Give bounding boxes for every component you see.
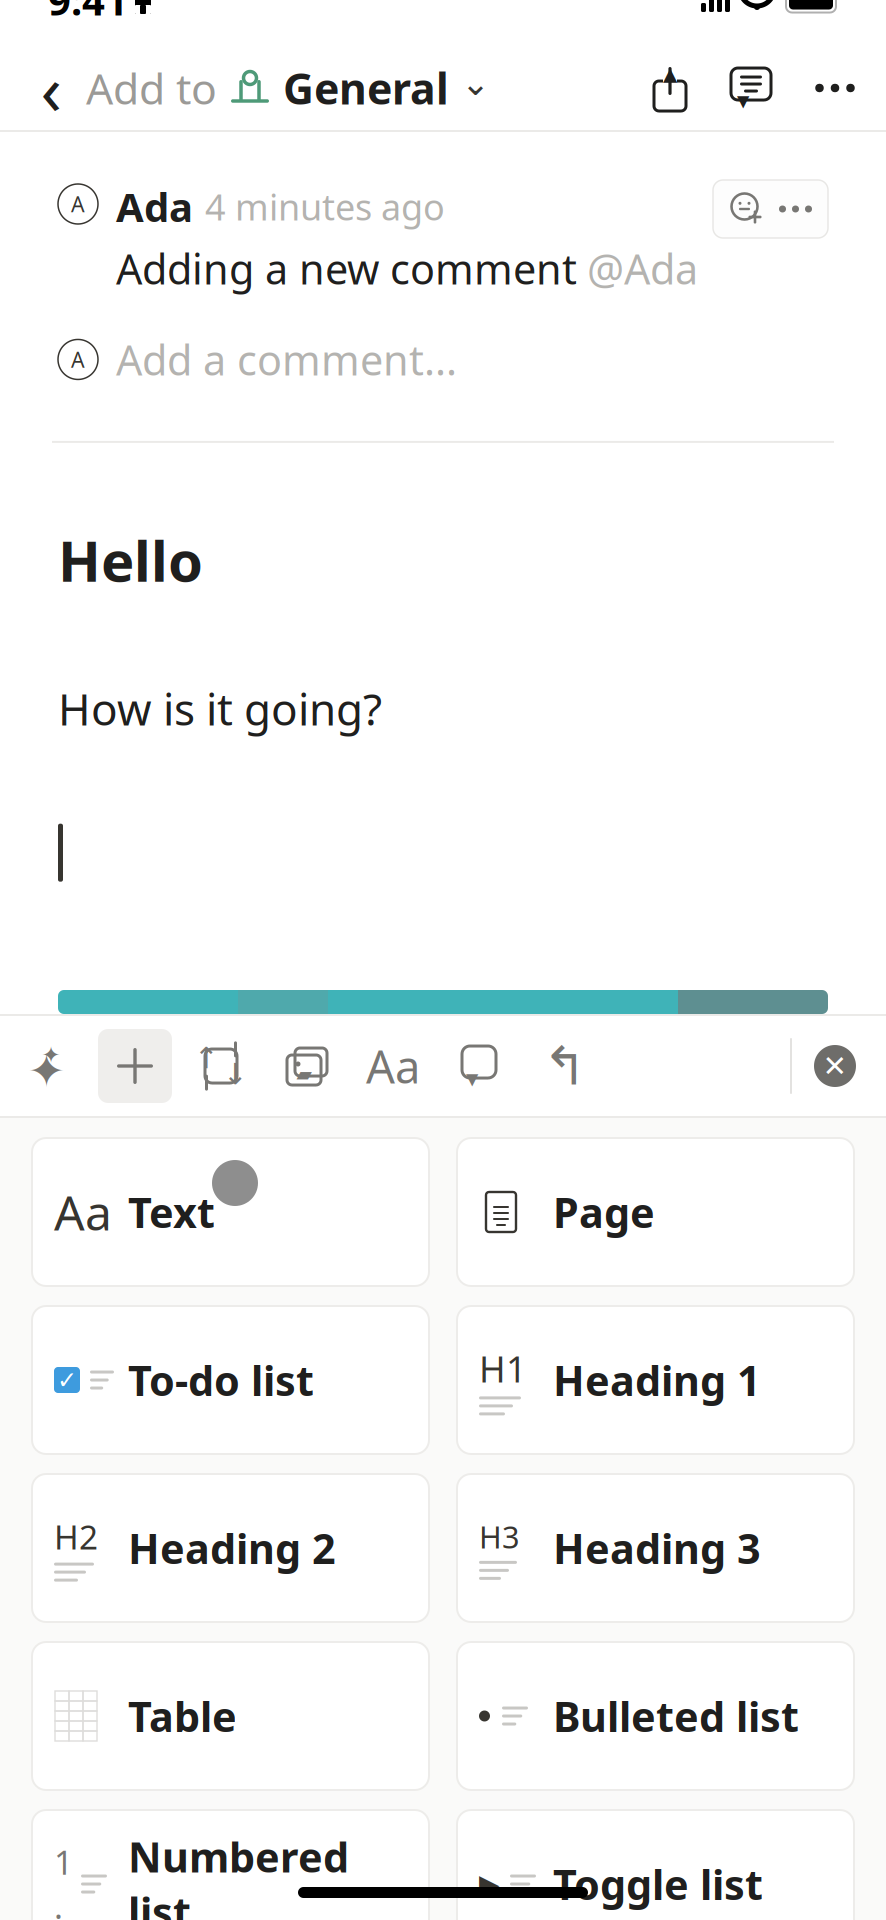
staticText: Add to [86, 60, 217, 116]
button[interactable]: 1. [32, 1810, 429, 1920]
staticText: H3 [479, 1516, 520, 1557]
button[interactable]: More options [812, 66, 858, 110]
button[interactable]: A [58, 296, 828, 387]
staticText: A [71, 190, 85, 218]
staticText: Ada [116, 180, 193, 233]
button[interactable]: ▶ [457, 1810, 854, 1920]
staticText: ↑ [194, 1041, 219, 1075]
staticText: ▼ [737, 92, 749, 110]
staticText: Heading 1 [553, 1353, 761, 1407]
staticText: ✦ [27, 1045, 65, 1097]
staticText: Numbered list [128, 1829, 349, 1920]
staticText: Bulleted list [553, 1689, 799, 1743]
staticText: A [71, 345, 85, 374]
button[interactable]: H3 [457, 1474, 854, 1622]
staticText: Heading 2 [128, 1521, 336, 1575]
staticText: Hello [58, 523, 203, 597]
staticText: 4 minutes ago [205, 183, 445, 230]
staticText: ▶ [479, 1869, 500, 1899]
button[interactable]: ✓ [32, 1306, 429, 1454]
staticText: ▰ [296, 1063, 311, 1085]
button[interactable]: Table [32, 1642, 429, 1790]
button[interactable]: Bulleted list [457, 1642, 854, 1790]
staticText: Table [128, 1689, 237, 1743]
staticText: How is it going? [58, 679, 382, 738]
button[interactable]: Close keyboard [792, 1029, 878, 1103]
button[interactable]: Comments [730, 66, 772, 110]
staticText: ✓ [57, 1366, 77, 1394]
staticText: Aa [366, 1036, 420, 1096]
button[interactable]: Share [650, 65, 690, 111]
button[interactable]: Aa [32, 1138, 429, 1286]
staticText: 1. [54, 1840, 73, 1920]
button[interactable]: Undo [522, 1029, 608, 1103]
staticText: ▲ [663, 63, 677, 85]
button[interactable]: Text formatting [350, 1029, 436, 1103]
button[interactable]: Insert block [92, 1029, 178, 1103]
staticText: H1 [479, 1345, 527, 1392]
staticText: ↰ [542, 1036, 587, 1096]
button[interactable]: Add to [74, 60, 490, 116]
button[interactable]: H1 [457, 1306, 854, 1454]
staticText: H2 [54, 1514, 98, 1559]
button[interactable]: React or more actions [713, 180, 828, 238]
staticText: @Ada [587, 241, 698, 296]
staticText: ✦ [41, 1042, 60, 1068]
button[interactable]: Comment [436, 1029, 522, 1103]
button[interactable]: Back [28, 60, 74, 116]
staticText: Add a comment... [116, 332, 457, 387]
button[interactable]: AI [6, 1029, 92, 1103]
button[interactable]: Page [457, 1138, 854, 1286]
staticText: ▼ [466, 1070, 478, 1088]
staticText: ↓ [223, 1057, 248, 1091]
staticText: General [283, 60, 449, 116]
staticText: Toggle list [553, 1857, 763, 1911]
staticText: ‹ [40, 42, 61, 134]
staticText: To-do list [128, 1353, 314, 1407]
staticText: ✕ [822, 1049, 847, 1083]
staticText: Text [128, 1185, 215, 1239]
staticText: Heading 3 [553, 1521, 761, 1575]
staticText: ⌄ [461, 63, 490, 103]
button[interactable]: H2 [32, 1474, 429, 1622]
button[interactable]: Insert media [264, 1029, 350, 1103]
staticText: 9:41 [48, 0, 128, 26]
staticText: Page [553, 1185, 655, 1239]
staticText: Aa [54, 1180, 112, 1244]
button[interactable]: Turn into [178, 1029, 264, 1103]
staticText: Adding a new comment [116, 241, 577, 296]
